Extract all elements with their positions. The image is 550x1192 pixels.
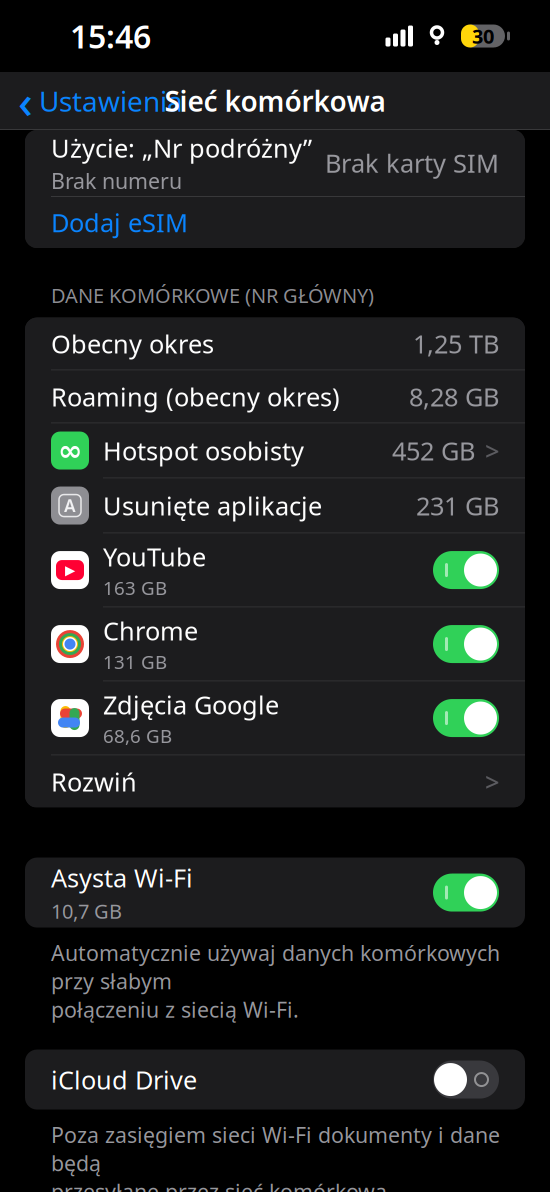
- staticText: >: [485, 434, 499, 467]
- button[interactable]: ∞: [25, 424, 525, 478]
- staticText: 231 GB: [416, 489, 499, 522]
- staticText: Ustawienia: [39, 82, 183, 120]
- staticText: 68,6 GB: [103, 723, 172, 748]
- staticText: 1,25 TB: [413, 327, 499, 360]
- staticText: 452 GB: [392, 434, 475, 467]
- button[interactable]: Dodaj eSIM: [25, 197, 525, 248]
- button[interactable]: Chrome: [25, 608, 525, 681]
- button[interactable]: ▶: [25, 534, 525, 607]
- staticText: Roaming (obecny okres): [51, 380, 340, 413]
- staticText: Obecny okres: [51, 327, 214, 360]
- staticText: ‹: [18, 71, 33, 131]
- button[interactable]: Zdjęcia Google: [25, 682, 525, 755]
- staticText: 8,28 GB: [409, 380, 499, 413]
- staticText: 131 GB: [103, 649, 167, 674]
- staticText: Usunięte aplikacje: [103, 489, 322, 522]
- staticText: ∞: [58, 434, 82, 467]
- staticText: Sieć komórkowa: [164, 82, 385, 120]
- staticText: Dodaj eSIM: [51, 206, 188, 239]
- button[interactable]: Asysta Wi-Fi: [25, 858, 525, 928]
- staticText: 10,7 GB: [51, 898, 122, 924]
- staticText: Hotspot osobisty: [103, 434, 304, 467]
- staticText: Automatycznie używaj danych komórkowych …: [51, 939, 500, 1024]
- button[interactable]: Obecny okres: [25, 318, 525, 370]
- staticText: 30: [472, 23, 494, 49]
- button[interactable]: A: [25, 479, 525, 533]
- button[interactable]: Użycie: „Nr podróżny”: [25, 130, 525, 196]
- staticText: >: [485, 765, 499, 798]
- staticText: DANE KOMÓRKOWE (NR GŁÓWNY): [51, 282, 374, 309]
- staticText: YouTube: [103, 540, 206, 573]
- staticText: Rozwiń: [51, 765, 137, 798]
- staticText: Zdjęcia Google: [103, 688, 279, 721]
- staticText: ▶: [65, 562, 75, 578]
- staticText: Użycie: „Nr podróżny”: [51, 131, 312, 165]
- button[interactable]: Rozwiń: [25, 756, 525, 808]
- staticText: A: [64, 494, 76, 517]
- staticText: Poza zasięgiem sieci Wi-Fi dokumenty i d…: [51, 1120, 500, 1192]
- staticText: Asysta Wi-Fi: [51, 861, 193, 895]
- staticText: Brak karty SIM: [325, 146, 499, 180]
- button[interactable]: Roaming (obecny okres): [25, 371, 525, 423]
- staticText: Brak numeru: [51, 167, 182, 195]
- staticText: Chrome: [103, 614, 198, 647]
- staticText: 15:46: [70, 15, 151, 57]
- staticText: iCloud Drive: [51, 1063, 197, 1096]
- staticText: 163 GB: [103, 575, 167, 600]
- button[interactable]: iCloud Drive: [25, 1049, 525, 1109]
- button[interactable]: ‹: [0, 72, 193, 130]
